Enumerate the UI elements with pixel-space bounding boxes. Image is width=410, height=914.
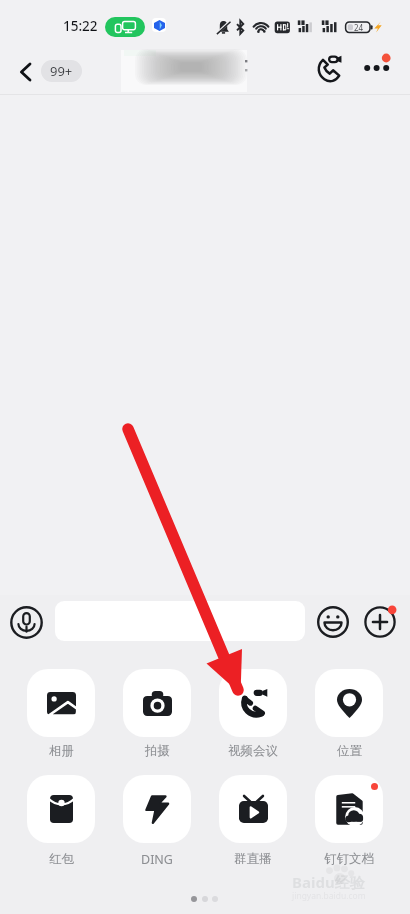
button[interactable] [123,669,191,737]
button[interactable]: Voice message [10,606,43,639]
staticText: 相册 [49,743,74,759]
staticText: DING [141,851,173,867]
button[interactable] [123,775,191,843]
button[interactable]: More [364,606,396,638]
button[interactable]: Emoji [317,606,349,638]
staticText: jingyan.baidu.com [292,890,366,902]
button[interactable] [27,775,95,843]
staticText: 24 [354,22,364,33]
button[interactable] [315,775,383,843]
button[interactable]: More options [358,51,394,87]
button[interactable]: 99+ [41,60,82,82]
staticText: 拍摄 [145,743,170,759]
staticText: 群直播 [234,851,272,867]
staticText: 位置 [337,743,362,759]
button[interactable] [219,775,287,843]
staticText: 红包 [49,851,74,867]
button[interactable] [315,669,383,737]
staticText: 钉钉文档 [324,851,374,867]
button[interactable] [27,669,95,737]
staticText: 15:22 [63,17,98,35]
button[interactable] [219,669,287,737]
staticText: Baidu经验 [292,872,365,892]
button[interactable] [55,601,305,641]
button[interactable]: Back [10,56,42,88]
staticText: 99+ [50,62,73,80]
staticText: 视频会议 [228,743,278,759]
button[interactable]: Video call [311,51,347,87]
